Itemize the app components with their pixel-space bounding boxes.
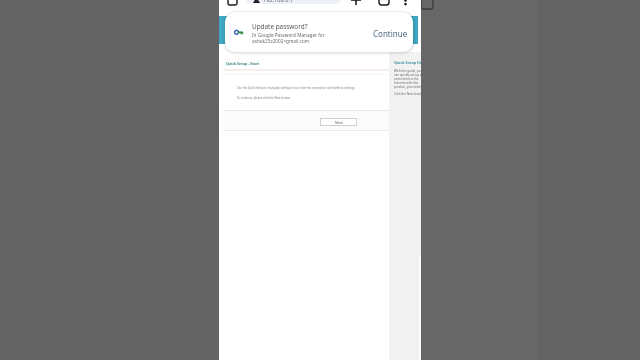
button[interactable]: 192.168.0.1	[246, 0, 341, 4]
button[interactable]: Tabs	[227, 0, 237, 5]
button[interactable]: More options	[400, 0, 410, 5]
staticText: With this guide, you can quickly set up …	[394, 69, 421, 89]
staticText: Next	[335, 120, 343, 125]
button[interactable]: Update password?	[225, 12, 413, 52]
staticText: Quick Setup Help	[394, 60, 421, 65]
button[interactable]	[224, 59, 265, 71]
staticText: 192.168.0.1	[263, 0, 294, 4]
staticText: Continue	[373, 28, 408, 39]
button[interactable]: New tab	[351, 0, 361, 5]
staticText: In Google Password Manager for	[252, 32, 325, 38]
staticText: To continue, please click the Next butto…	[237, 96, 291, 100]
staticText: Use the Quick Setup to manually configur…	[237, 86, 356, 90]
button[interactable]: Share	[379, 0, 389, 5]
staticText: Quick Setup - Start	[226, 61, 260, 66]
button[interactable]: Next	[320, 118, 357, 126]
staticText: Click the Next button.	[394, 92, 421, 96]
button[interactable]: Continue	[365, 22, 412, 43]
staticText: Update password?	[252, 22, 308, 31]
staticText: ashok25z2002=gmail.com	[252, 38, 310, 44]
